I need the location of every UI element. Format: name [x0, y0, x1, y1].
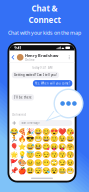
staticText: ⭐: [18, 143, 26, 151]
button[interactable]: 😌: [42, 151, 50, 158]
staticText: 😌: [42, 151, 50, 158]
staticText: 😇: [26, 151, 34, 158]
button[interactable]: 🔥: [18, 136, 26, 142]
button[interactable]: 😪: [42, 167, 50, 174]
button[interactable]: 😐: [26, 159, 34, 166]
staticText: 🤐: [58, 166, 66, 174]
staticText: 😂: [10, 127, 18, 135]
staticText: 😅: [26, 143, 34, 151]
staticText: 😁: [34, 135, 42, 143]
button[interactable]: 💡: [18, 151, 26, 158]
staticText: 🙄: [50, 159, 58, 166]
staticText: 😙: [58, 151, 66, 158]
staticText: 🤗: [66, 143, 74, 151]
staticText: Online: [25, 58, 35, 62]
staticText: 😫: [26, 166, 34, 174]
button[interactable]: More options: [67, 55, 75, 60]
button[interactable]: 😫: [26, 167, 34, 174]
staticText: 🌟: [10, 151, 18, 158]
staticText: 😘: [66, 127, 74, 135]
staticText: Today 9:41 AM: [32, 66, 52, 69]
staticText: 😃: [42, 135, 50, 143]
staticText: 🏃: [10, 135, 18, 143]
staticText: 🙃: [34, 151, 42, 158]
staticText: 😉: [58, 135, 66, 143]
button[interactable]: 😄: [66, 136, 74, 142]
staticText: 😜: [58, 143, 66, 151]
button[interactable]: 😚: [66, 151, 74, 158]
button[interactable]: 😛: [50, 144, 58, 150]
button[interactable]: 🍕: [18, 128, 26, 135]
button[interactable]: 🤐: [58, 167, 66, 174]
button[interactable]: ❤️: [58, 128, 66, 135]
staticText: 🔥: [18, 135, 26, 143]
staticText: 9:41: [14, 45, 21, 50]
button[interactable]: 🙂: [50, 136, 58, 142]
button[interactable]: Back: [9, 55, 17, 60]
staticText: 😴: [34, 166, 42, 174]
button[interactable]: 😃: [42, 136, 50, 142]
button[interactable]: 😍: [50, 128, 58, 135]
staticText: 😬: [66, 166, 74, 174]
staticText: 🍕: [18, 127, 26, 135]
staticText: 😀: [34, 127, 42, 135]
button[interactable]: 😏: [58, 159, 66, 166]
staticText: 🎉: [26, 127, 34, 135]
staticText: I'll be there: [14, 96, 32, 99]
button[interactable]: 😇: [26, 151, 34, 158]
button[interactable]: 😑: [34, 159, 42, 166]
button[interactable]: 😂: [10, 128, 18, 135]
button[interactable]: 🎉: [26, 128, 34, 135]
staticText: 🙂: [50, 135, 58, 143]
button[interactable]: 😗: [50, 151, 58, 158]
button[interactable]: 🙄: [50, 159, 58, 166]
staticText: 😗: [50, 151, 58, 158]
button[interactable]: 🍎: [18, 167, 26, 174]
button[interactable]: 🎈: [10, 144, 18, 150]
staticText: Start a message: [21, 121, 40, 125]
button[interactable]: 🙃: [34, 151, 42, 158]
staticText: 😋: [42, 143, 50, 151]
staticText: Chat with your kids on the map: [8, 29, 81, 36]
button[interactable]: 😎: [26, 136, 34, 142]
staticText: 😚: [66, 151, 74, 158]
staticText: 😛: [50, 143, 58, 151]
staticText: Yes. When will you come?: [35, 82, 70, 85]
button[interactable]: 🤗: [66, 144, 74, 150]
staticText: 😎: [26, 135, 34, 143]
staticText: 🍎: [18, 166, 26, 174]
button[interactable]: 😅: [26, 144, 34, 150]
button[interactable]: 😣: [66, 159, 74, 166]
staticText: 😆: [34, 143, 42, 151]
staticText: Connect: [28, 15, 60, 25]
staticText: 🎨: [18, 159, 26, 166]
staticText: 😏: [58, 159, 66, 166]
button[interactable]: 📌: [10, 167, 18, 174]
staticText: 😑: [34, 159, 42, 166]
button[interactable]: 😉: [58, 136, 66, 142]
button[interactable]: 😙: [58, 151, 66, 158]
button[interactable]: 😋: [42, 144, 50, 150]
button[interactable]: 😶: [42, 159, 50, 166]
button[interactable]: 😜: [58, 144, 66, 150]
button[interactable]: 😴: [34, 167, 42, 174]
button[interactable]: 🏃: [10, 136, 18, 142]
button[interactable]: 🎨: [18, 159, 26, 166]
button[interactable]: 🚩: [10, 159, 18, 166]
button[interactable]: 😘: [66, 128, 74, 135]
button[interactable]: Add attachment: [12, 120, 17, 125]
button[interactable]: 😆: [34, 144, 42, 150]
button[interactable]: 😵: [50, 167, 58, 174]
staticText: 😐: [26, 159, 34, 166]
button[interactable]: ⭐: [18, 144, 26, 150]
staticText: 😶: [42, 159, 50, 166]
button[interactable]: 🌟: [10, 151, 18, 158]
staticText: 😣: [66, 159, 74, 166]
staticText: 😍: [50, 127, 58, 135]
staticText: 😄: [66, 135, 74, 143]
button[interactable]: 😀: [34, 128, 42, 135]
button[interactable]: 😬: [66, 167, 74, 174]
button[interactable]: 😊: [42, 128, 50, 135]
button[interactable]: 😁: [34, 136, 42, 142]
staticText: 🎈: [10, 143, 18, 151]
